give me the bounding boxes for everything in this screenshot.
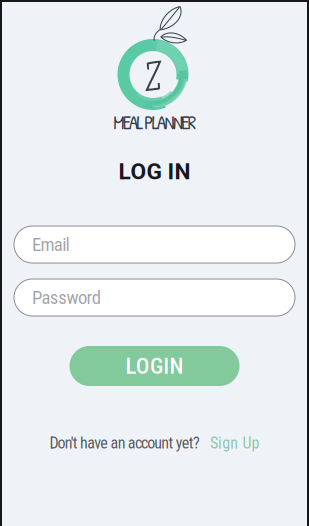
button[interactable]: Sign Up (210, 434, 259, 452)
staticText: Password (32, 287, 101, 308)
button[interactable]: LOGIN (69, 346, 239, 386)
staticText: Email (32, 234, 70, 255)
staticText: LOG IN (118, 158, 190, 185)
button[interactable]: Password (14, 279, 295, 316)
button[interactable]: Email (14, 226, 295, 263)
staticText: Don't have an account yet? (49, 434, 200, 452)
staticText: Sign Up (210, 434, 259, 452)
staticText: MEAL PLANNER (113, 110, 196, 135)
staticText: LOGIN (126, 353, 183, 379)
